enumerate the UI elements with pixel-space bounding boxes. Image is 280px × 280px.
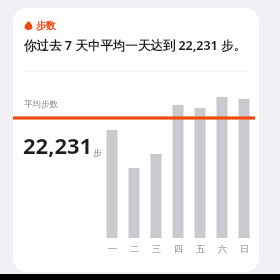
staticText: 平均步数 (24, 99, 58, 110)
staticText: 你过去 7 天中平均一天达到 22,231 步。 (24, 37, 252, 54)
staticText: 三 (152, 243, 161, 254)
staticText: 步数 (36, 19, 56, 32)
staticText: 日 (240, 243, 249, 254)
staticText: 五 (196, 243, 205, 254)
staticText: 六 (218, 243, 227, 254)
other: Steps (24, 21, 33, 30)
staticText: 一 (108, 243, 117, 254)
staticText: 二 (130, 243, 139, 254)
staticText: 四 (174, 243, 183, 254)
staticText: 22,231 (23, 130, 93, 160)
button[interactable]: Steps (13, 8, 259, 272)
button[interactable]: Steps (24, 19, 56, 32)
staticText: 步 (93, 147, 102, 158)
